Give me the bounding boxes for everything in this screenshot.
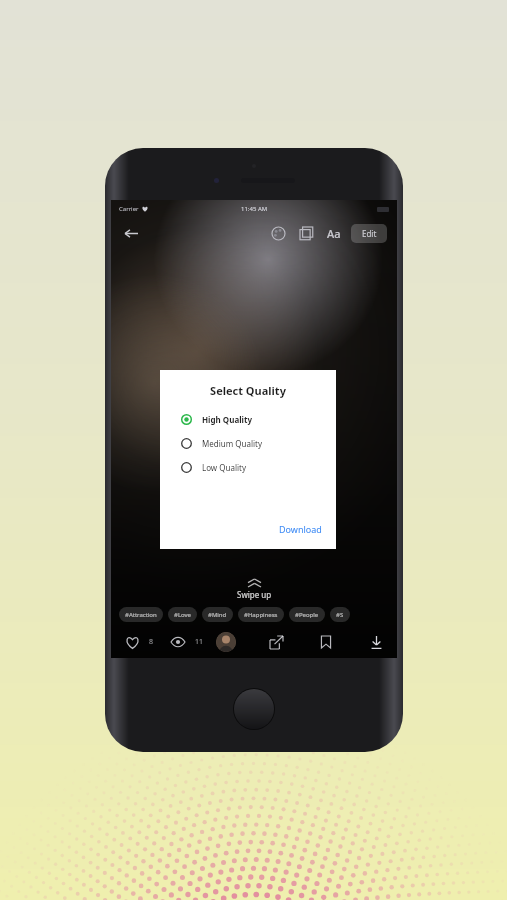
staticText: #Love [174, 611, 191, 619]
button[interactable]: Low Quality [160, 462, 336, 473]
staticText: 8 [149, 637, 154, 647]
button[interactable]: Back [121, 223, 141, 243]
staticText: Low Quality [202, 462, 247, 473]
staticText: #People [295, 611, 319, 619]
staticText: Swipe up [237, 589, 272, 600]
button[interactable]: Like [122, 632, 142, 652]
staticText: Edit [362, 228, 377, 239]
button[interactable]: Medium Quality [160, 438, 336, 449]
staticText: Carrier [119, 205, 139, 213]
button[interactable]: #Mind [202, 607, 233, 622]
staticText: #Happiness [244, 611, 278, 619]
button[interactable]: Download [269, 515, 336, 549]
button[interactable]: Edit [351, 224, 387, 243]
button[interactable]: Profile [216, 632, 236, 652]
button[interactable]: Views [168, 632, 188, 652]
staticText: #Attraction [125, 611, 157, 619]
staticText: Aa [327, 226, 341, 241]
button[interactable]: #S [330, 607, 350, 622]
button[interactable]: Home [233, 688, 275, 730]
staticText: Select Quality [160, 383, 336, 398]
staticText: 11:45 AM [241, 205, 268, 213]
staticText: Download [279, 523, 322, 535]
button[interactable]: #People [289, 607, 325, 622]
staticText: #Mind [208, 611, 227, 619]
button[interactable]: Color palette [267, 222, 289, 244]
button[interactable]: Share [266, 632, 286, 652]
staticText: 11 [195, 637, 204, 647]
button[interactable]: High Quality [160, 414, 336, 425]
button[interactable]: Background image [295, 222, 317, 244]
button[interactable]: #Love [168, 607, 197, 622]
button[interactable]: Download [366, 632, 386, 652]
button[interactable]: #Happiness [238, 607, 284, 622]
button[interactable]: #Attraction [119, 607, 163, 622]
staticText: High Quality [202, 414, 252, 425]
button[interactable]: Bookmark [316, 632, 336, 652]
staticText: Medium Quality [202, 438, 263, 449]
staticText: #S [336, 611, 344, 619]
button[interactable]: Aa [323, 222, 345, 244]
